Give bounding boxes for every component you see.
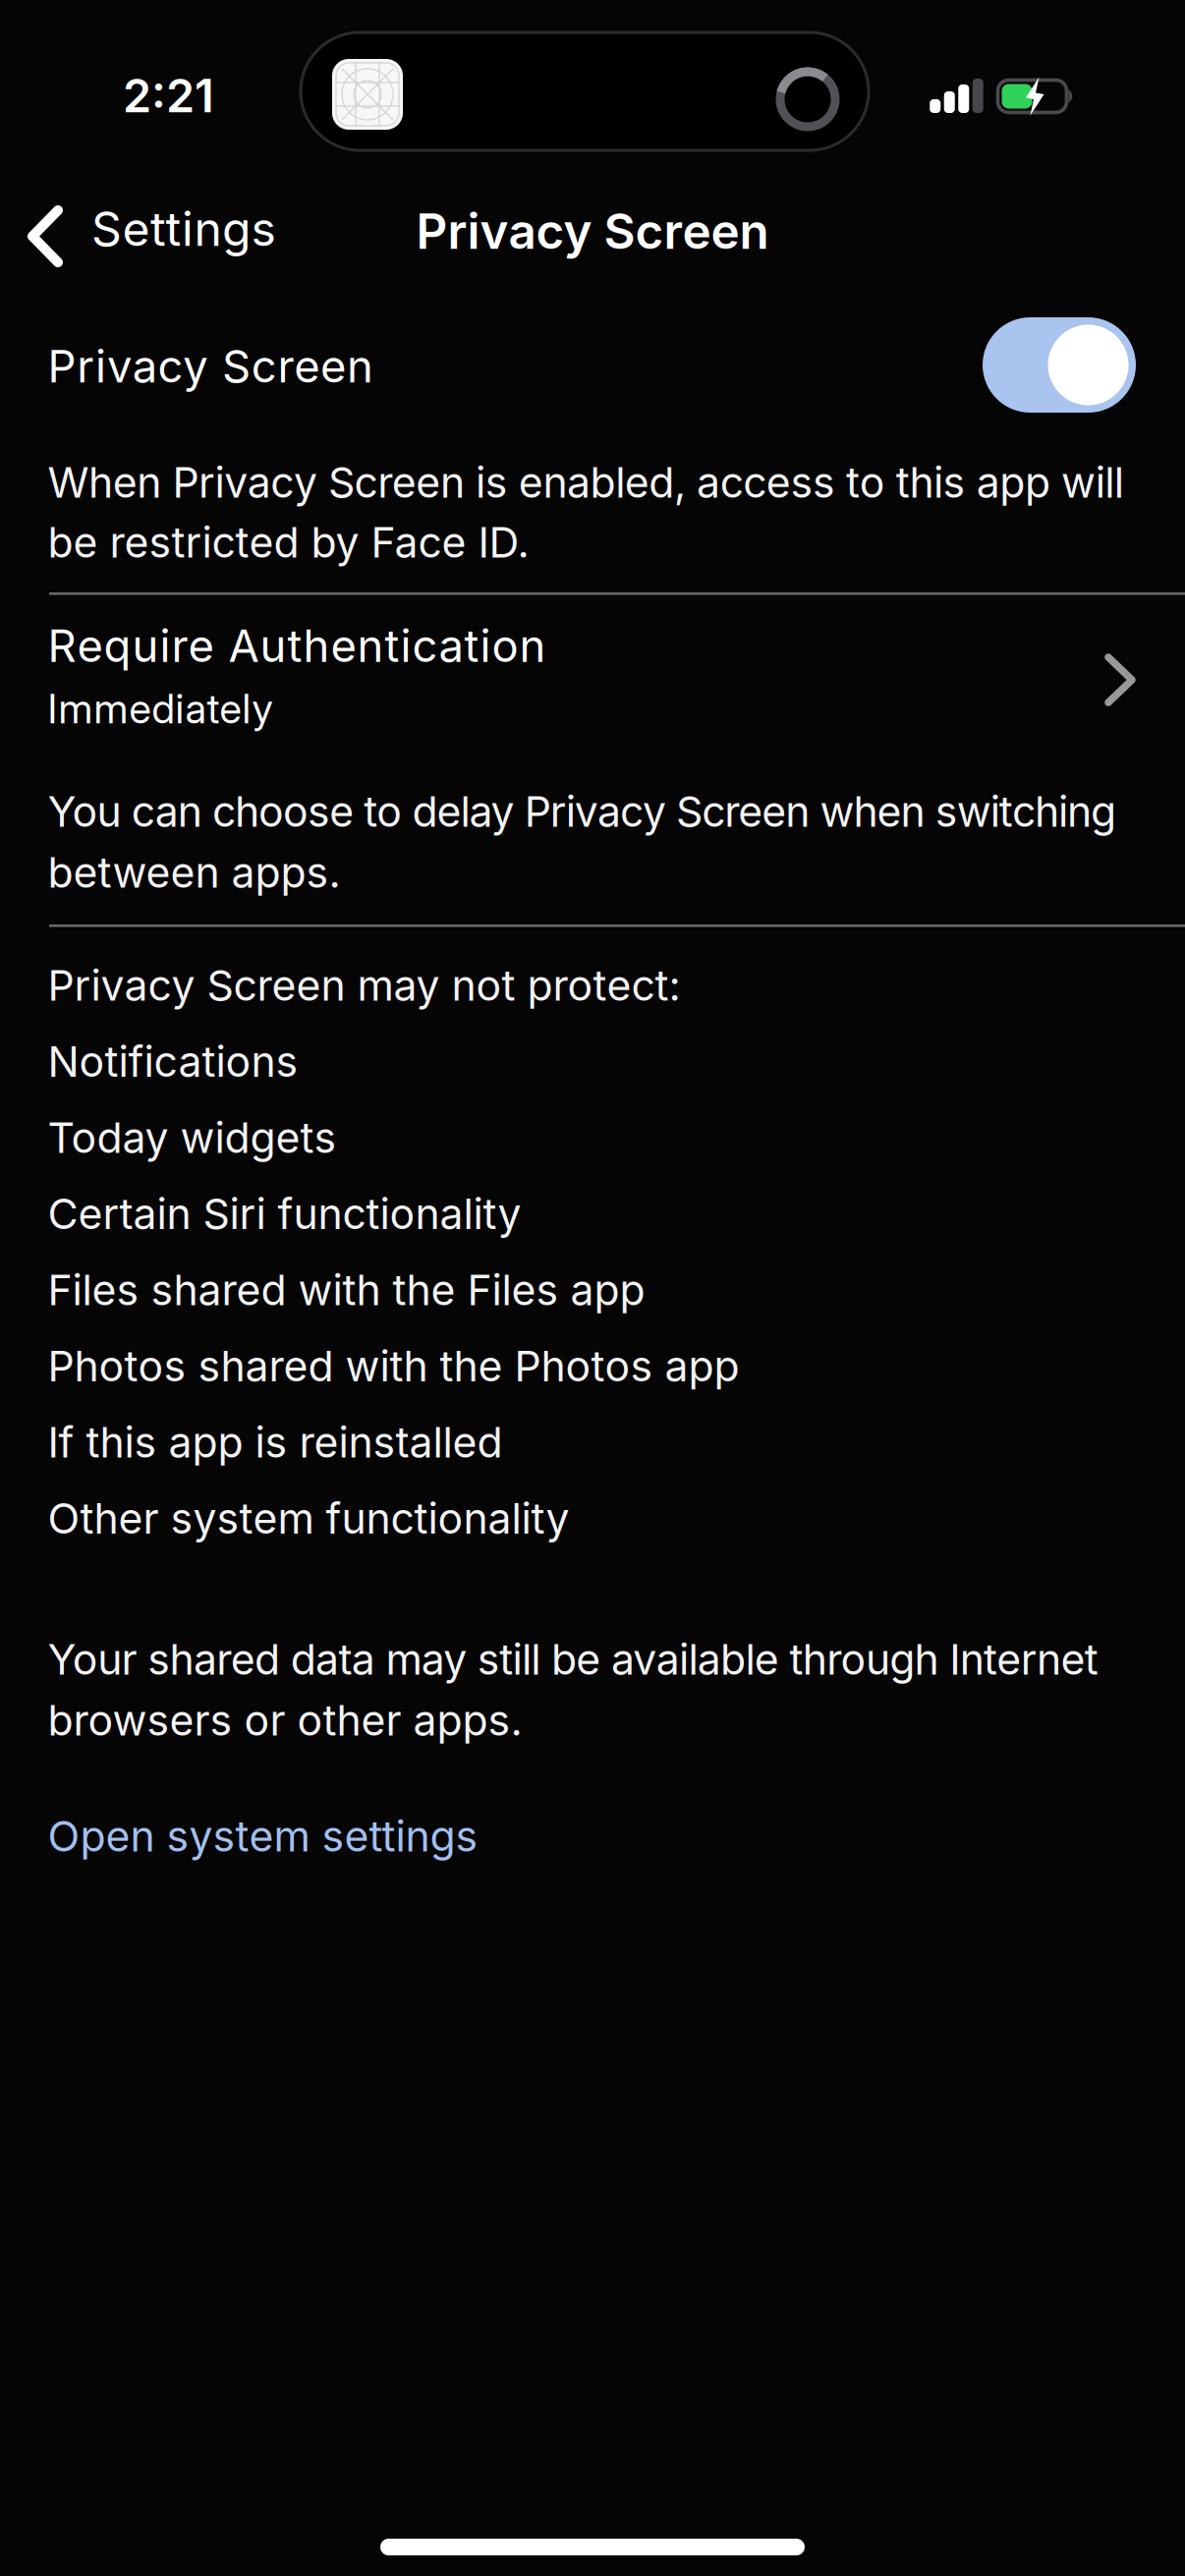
- button[interactable]: Back to Settings: [28, 196, 283, 272]
- staticText: Other system functionality: [48, 1494, 569, 1543]
- staticText: Settings: [91, 201, 276, 257]
- staticText: Privacy Screen may not protect:: [48, 961, 680, 1010]
- staticText: between apps.: [48, 848, 340, 897]
- button[interactable]: Privacy Screen: [983, 317, 1136, 413]
- staticText: If this app is reinstalled: [48, 1417, 503, 1467]
- staticText: Today widgets: [48, 1113, 337, 1162]
- staticText: Open system settings: [48, 1811, 478, 1861]
- staticText: Privacy Screen: [416, 202, 769, 260]
- staticText: Photos shared with the Photos app: [48, 1341, 739, 1391]
- button[interactable]: Require Authentication: [0, 605, 1185, 762]
- staticText: be restricted by Face ID.: [48, 517, 529, 567]
- staticText: Privacy Screen: [48, 340, 373, 393]
- staticText: Files shared with the Files app: [48, 1265, 645, 1315]
- staticText: You can choose to delay Privacy Screen w…: [48, 787, 1116, 836]
- button[interactable]: Open system settings: [48, 1811, 478, 1861]
- staticText: Your shared data may still be available …: [48, 1635, 1098, 1684]
- staticText: Certain Siri functionality: [48, 1189, 521, 1238]
- staticText: browsers or other apps.: [48, 1695, 522, 1745]
- staticText: 2:21: [123, 69, 214, 123]
- staticText: Immediately: [48, 685, 273, 733]
- staticText: Notifications: [48, 1037, 298, 1086]
- staticText: When Privacy Screen is enabled, access t…: [48, 458, 1124, 507]
- staticText: Require Authentication: [48, 620, 546, 672]
